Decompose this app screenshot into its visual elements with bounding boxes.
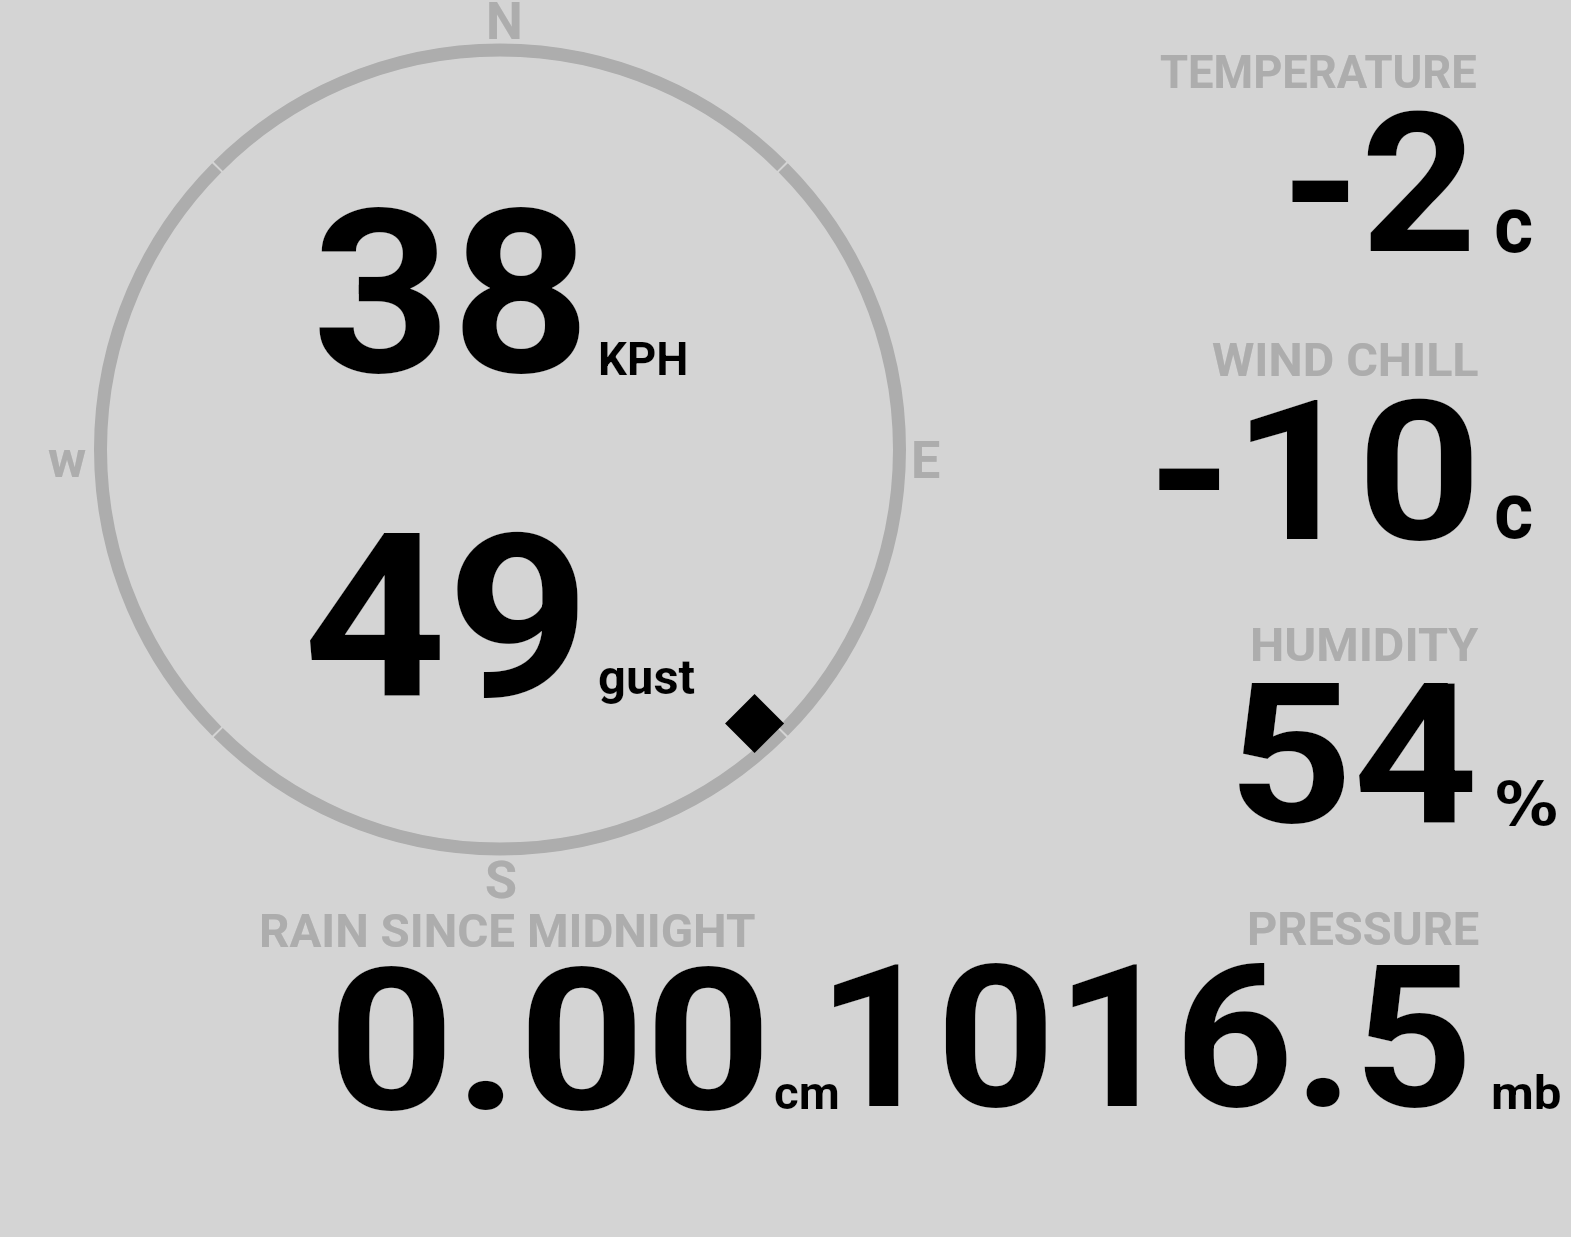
button[interactable]: Humidity 54 percent — [1100, 588, 1571, 860]
staticText: 1016.5 — [817, 921, 1474, 1154]
staticText: c — [1494, 464, 1533, 558]
staticText: mb — [1491, 1065, 1562, 1120]
button[interactable]: Rain since midnight 0.00 cm — [220, 888, 850, 1128]
staticText: KPH — [598, 331, 689, 386]
staticText: RAIN SINCE MIDNIGHT — [259, 903, 756, 958]
staticText: 38 — [312, 160, 591, 427]
staticText: cm — [774, 1066, 840, 1120]
staticText: gust — [598, 649, 696, 705]
staticText: 54 — [1228, 642, 1479, 869]
staticText: PRESSURE — [1247, 901, 1480, 956]
staticText: w — [48, 429, 87, 490]
staticText: -10 — [1147, 359, 1483, 586]
staticText: E — [911, 430, 941, 491]
staticText: S — [485, 850, 518, 911]
staticText: HUMIDITY — [1250, 617, 1479, 672]
staticText: c — [1494, 178, 1533, 272]
staticText: -2 — [1281, 71, 1477, 298]
staticText: N — [486, 0, 523, 52]
staticText: % — [1495, 768, 1559, 839]
staticText: WIND CHILL — [1212, 332, 1479, 387]
staticText: TEMPERATURE — [1160, 44, 1477, 99]
staticText: 49 — [303, 484, 591, 751]
button[interactable]: Temperature -2 degrees Celsius — [1100, 18, 1571, 290]
button[interactable]: Pressure 1016.5 mb — [860, 888, 1571, 1128]
button[interactable]: Wind direction compass, 38 KPH from sout… — [40, 0, 960, 890]
staticText: 0.00 — [328, 924, 772, 1157]
button[interactable]: Wind chill -10 degrees Celsius — [1100, 300, 1571, 576]
